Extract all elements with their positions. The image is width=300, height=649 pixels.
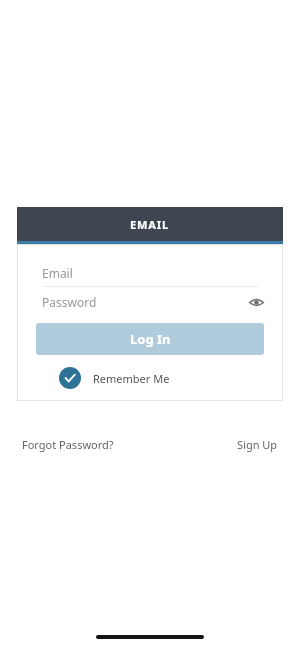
button[interactable]: Forgot Password? <box>22 437 114 452</box>
button[interactable]: Show password <box>243 289 269 315</box>
staticText: Email <box>42 265 73 281</box>
staticText: Forgot Password? <box>22 437 114 452</box>
button[interactable]: Sign Up <box>237 437 278 452</box>
button[interactable]: Email <box>17 260 283 286</box>
staticText: Remember Me <box>93 371 170 386</box>
staticText: Log In <box>130 330 171 348</box>
button[interactable]: Remember Me <box>59 363 170 393</box>
staticText: Sign Up <box>237 437 278 452</box>
button[interactable]: Password <box>17 287 283 316</box>
staticText: EMAIL <box>130 217 170 232</box>
button[interactable]: Log In <box>36 323 264 355</box>
staticText: Password <box>42 294 97 310</box>
